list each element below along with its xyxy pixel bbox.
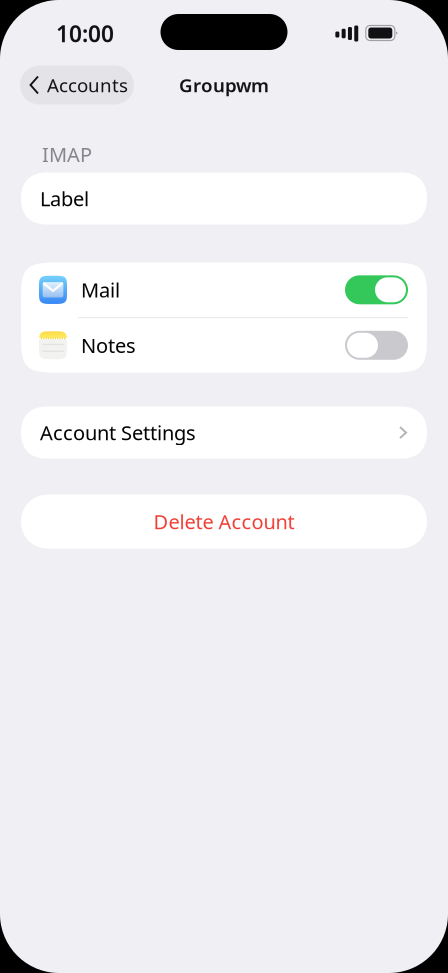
staticText: Account Settings <box>40 419 196 446</box>
staticText: Groupwm <box>179 73 269 97</box>
button[interactable]: Delete Account <box>21 495 427 549</box>
staticText: 10:00 <box>56 18 114 48</box>
staticText: Label <box>40 185 89 212</box>
staticText: IMAP <box>42 141 92 168</box>
staticText: Accounts <box>47 73 128 97</box>
button[interactable]: Accounts <box>20 65 134 104</box>
staticText: Mail <box>81 276 120 303</box>
staticText: Delete Account <box>153 508 294 535</box>
button[interactable]: Account Settings <box>21 407 427 459</box>
staticText: Notes <box>81 332 136 359</box>
